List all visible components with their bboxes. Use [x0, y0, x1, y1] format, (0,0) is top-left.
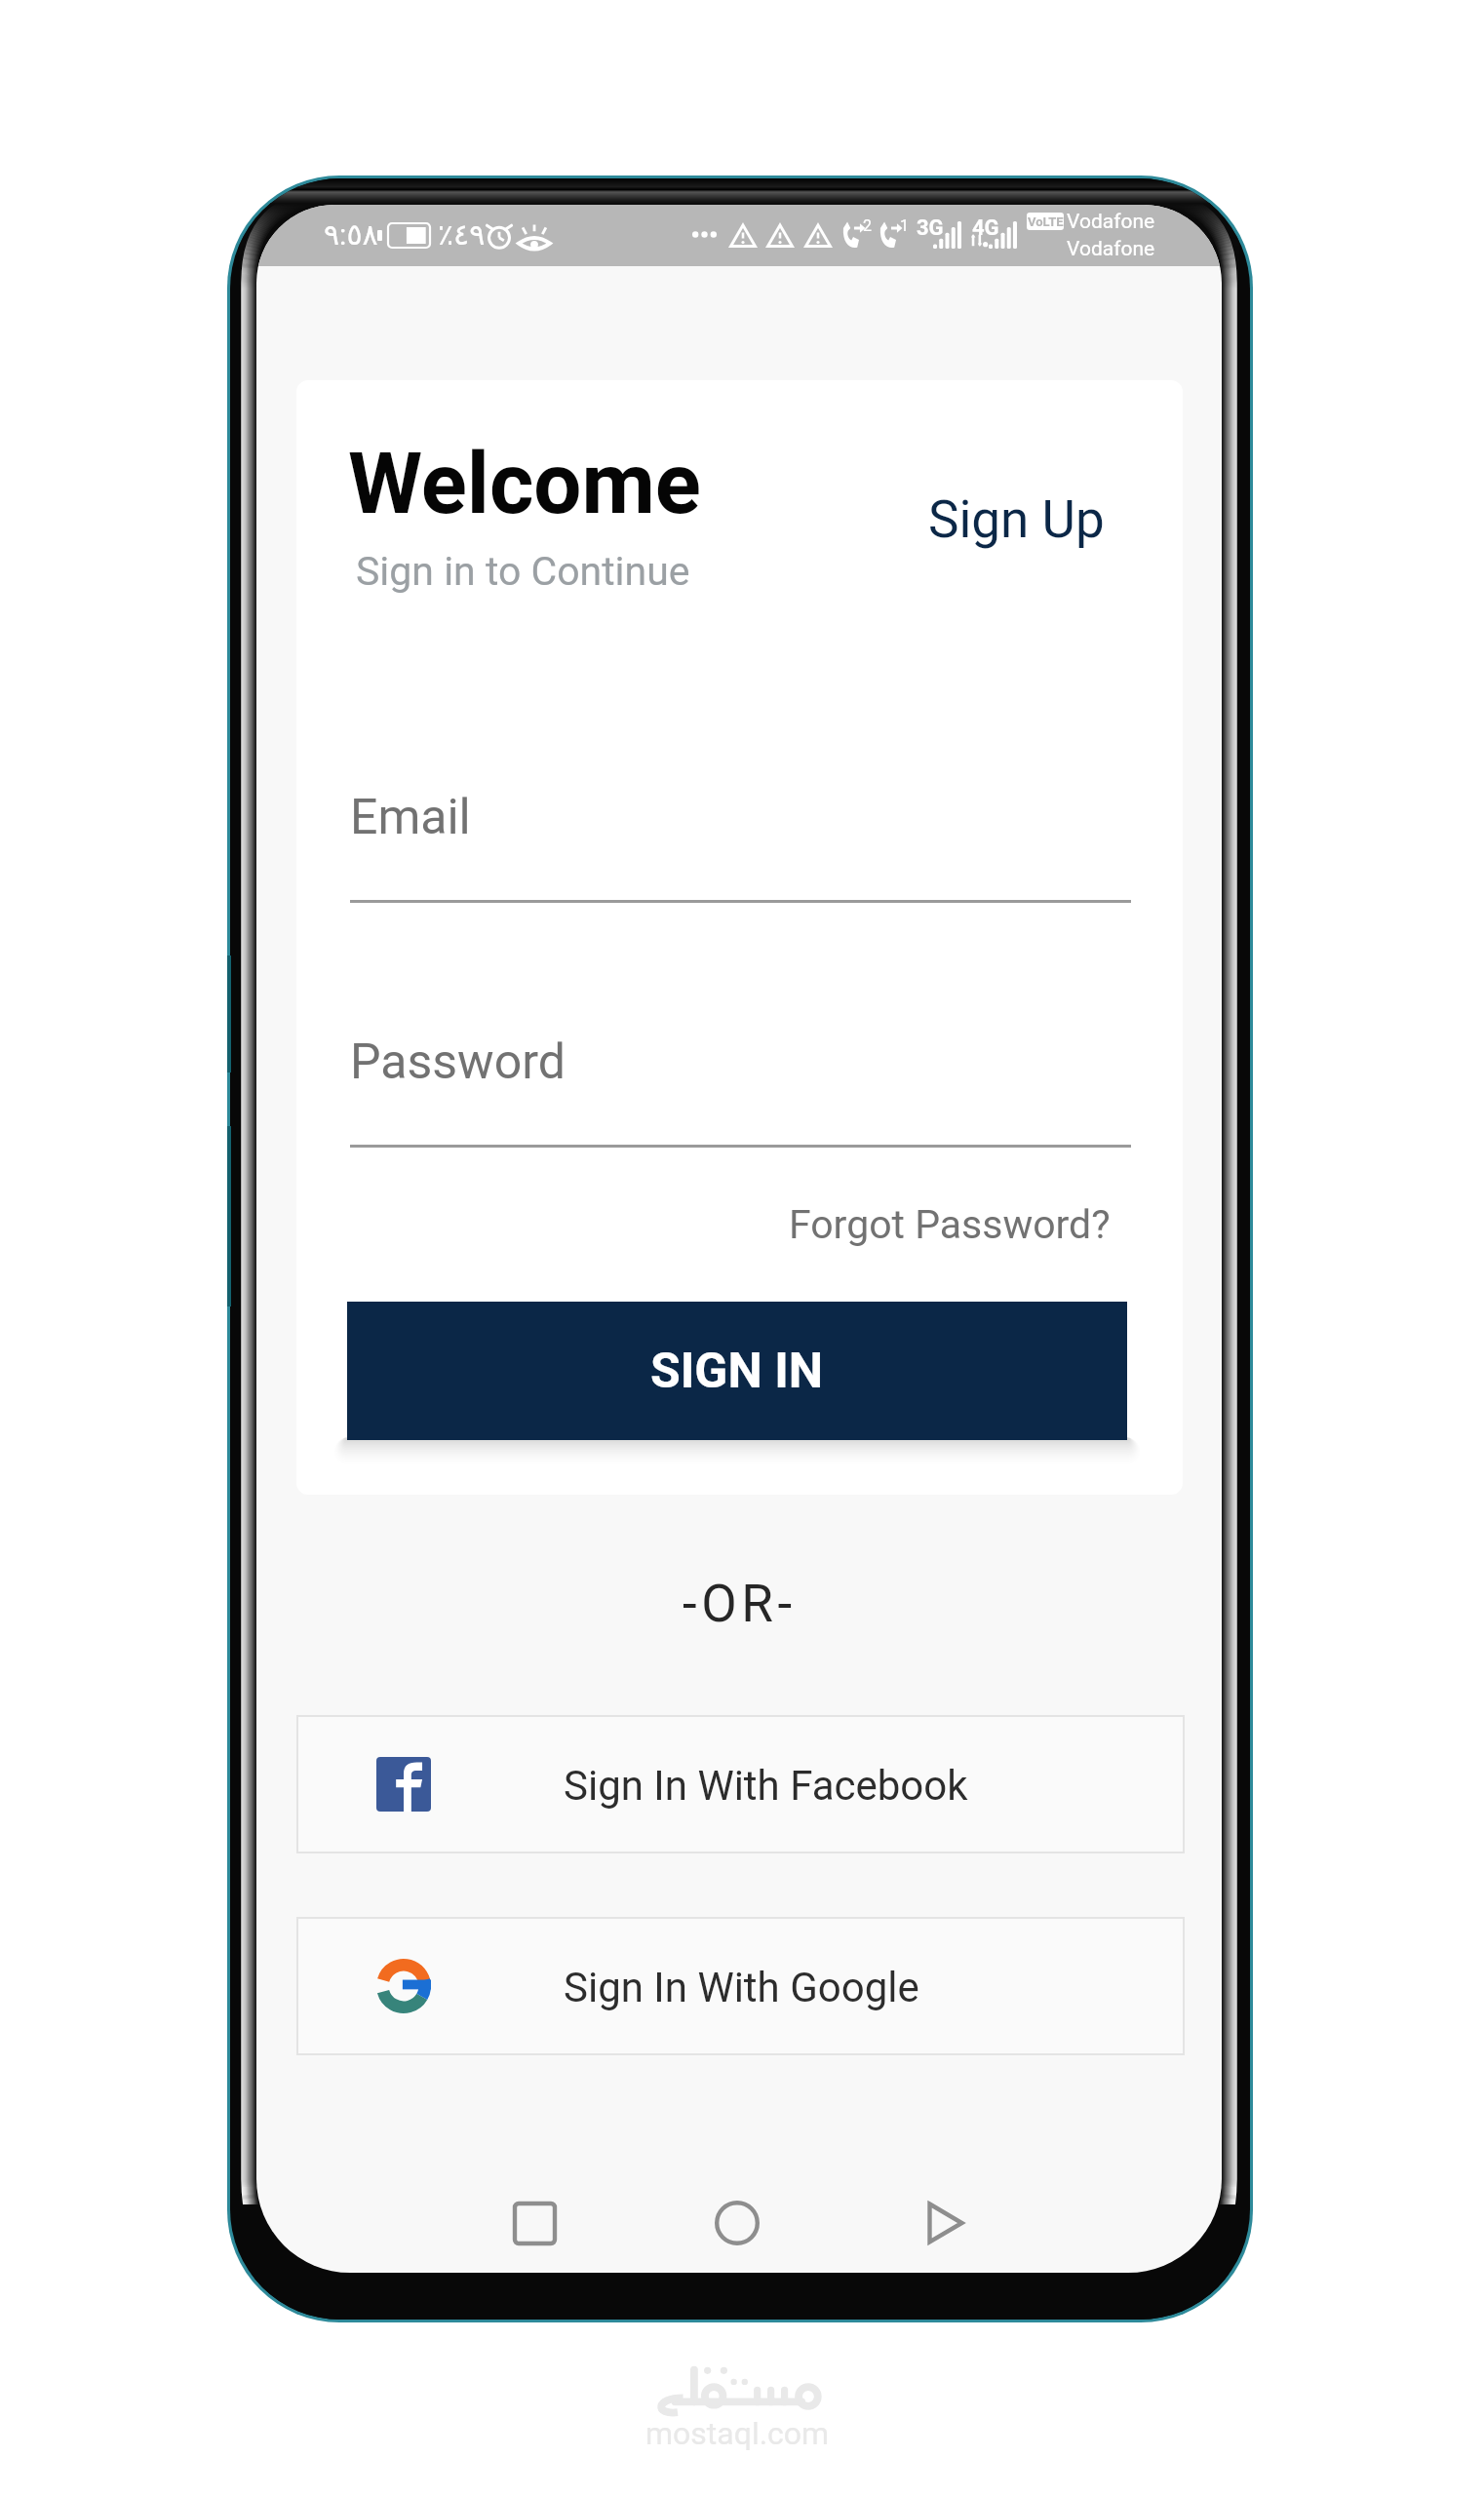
staticText: ٩:٥٨	[324, 217, 378, 252]
staticText: 3G	[917, 215, 944, 241]
button[interactable]: Back	[911, 2188, 981, 2258]
staticText: Sign In With Facebook	[564, 1762, 968, 1810]
staticText: -OR-	[683, 1574, 797, 1634]
staticText: Sign in to Continue	[356, 548, 690, 595]
button[interactable]: Sign in with Google	[296, 1917, 1185, 2055]
button[interactable]: Forgot Password?	[771, 1184, 1128, 1266]
staticText: Forgot Password?	[789, 1201, 1111, 1248]
staticText: 2	[863, 216, 872, 235]
staticText: Vodafone	[1067, 210, 1155, 234]
staticText: Vodafone	[1067, 237, 1155, 261]
staticText: Email	[350, 789, 471, 846]
button[interactable]: SIGN IN	[347, 1302, 1127, 1440]
staticText: Sign Up	[928, 489, 1105, 550]
staticText: Welcome	[348, 434, 701, 533]
button[interactable]: Home	[702, 2188, 772, 2258]
staticText: VoLTE	[1028, 214, 1064, 229]
staticText: Sign In With Google	[564, 1964, 919, 2011]
staticText: ٪٤٩	[438, 217, 486, 252]
staticText: SIGN IN	[650, 1343, 824, 1400]
staticText: 1	[900, 216, 909, 235]
staticText: mostaql.com	[645, 2415, 830, 2452]
button[interactable]: Sign in with Facebook	[296, 1715, 1185, 1853]
button[interactable]: Recent apps	[499, 2188, 569, 2258]
staticText: Password	[350, 1033, 566, 1091]
button[interactable]: Sign Up	[911, 472, 1122, 567]
staticText: 4G	[972, 215, 999, 241]
